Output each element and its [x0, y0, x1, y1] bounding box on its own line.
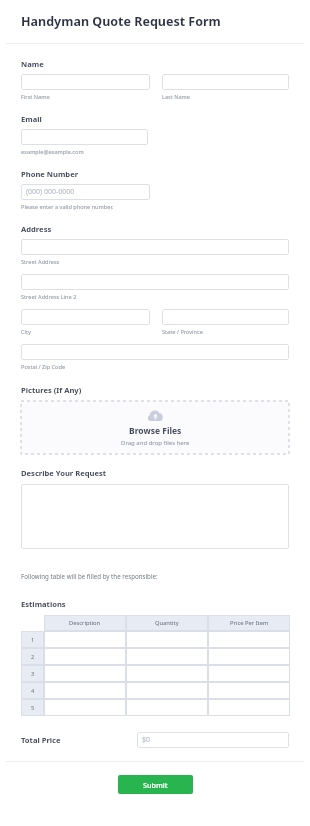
- staticText: Street Address: [21, 258, 60, 266]
- staticText: Last Name: [162, 93, 190, 101]
- staticText: Handyman Quote Request Form: [21, 13, 221, 30]
- staticText: (000) 000-0000: [26, 187, 75, 197]
- button[interactable]: [208, 631, 290, 648]
- staticText: 2: [31, 653, 35, 661]
- button[interactable]: [126, 682, 208, 699]
- staticText: Please enter a valid phone number.: [21, 203, 114, 211]
- staticText: 5: [31, 704, 35, 712]
- staticText: Pictures (If Any): [21, 385, 82, 395]
- button[interactable]: Browse Files, drag and drop files here: [21, 401, 289, 454]
- staticText: Total Price: [21, 735, 61, 745]
- staticText: 1: [31, 636, 35, 644]
- staticText: Postal / Zip Code: [21, 363, 66, 371]
- button[interactable]: [44, 699, 126, 716]
- button[interactable]: [21, 344, 289, 360]
- staticText: example@example.com: [21, 148, 84, 156]
- staticText: $0: [142, 735, 151, 745]
- button[interactable]: [21, 74, 150, 90]
- button[interactable]: [208, 648, 290, 665]
- staticText: Estimations: [21, 599, 66, 609]
- staticText: State / Province: [162, 328, 203, 336]
- button[interactable]: [208, 665, 290, 682]
- staticText: Following table will be filled by the re…: [21, 572, 158, 580]
- staticText: Price Per Item: [230, 619, 269, 627]
- staticText: First Name: [21, 93, 50, 101]
- button[interactable]: [208, 682, 290, 699]
- button[interactable]: [126, 648, 208, 665]
- staticText: Quantity: [155, 619, 179, 627]
- button[interactable]: [44, 631, 126, 648]
- button[interactable]: [21, 129, 148, 145]
- button[interactable]: [21, 239, 289, 255]
- button[interactable]: [44, 682, 126, 699]
- staticText: Phone Number: [21, 169, 79, 179]
- staticText: Submit: [143, 780, 168, 790]
- button[interactable]: [208, 699, 290, 716]
- staticText: Drag and drop files here: [121, 439, 190, 447]
- staticText: Address: [21, 224, 52, 234]
- button[interactable]: Submit: [118, 775, 193, 794]
- button[interactable]: (000) 000-0000: [21, 184, 150, 200]
- staticText: 4: [31, 687, 35, 695]
- staticText: City: [21, 328, 31, 336]
- button[interactable]: [162, 309, 289, 325]
- staticText: Email: [21, 114, 42, 124]
- button[interactable]: [21, 309, 150, 325]
- button[interactable]: [21, 274, 289, 290]
- button[interactable]: [126, 631, 208, 648]
- button[interactable]: $0: [137, 732, 289, 748]
- button[interactable]: [44, 665, 126, 682]
- button[interactable]: [126, 665, 208, 682]
- button[interactable]: [44, 648, 126, 665]
- staticText: Name: [21, 59, 44, 69]
- staticText: 3: [31, 670, 35, 678]
- button[interactable]: [126, 699, 208, 716]
- button[interactable]: [21, 484, 289, 549]
- staticText: Describe Your Request: [21, 468, 107, 478]
- staticText: Street Address Line 2: [21, 293, 77, 301]
- staticText: Description: [69, 619, 101, 627]
- button[interactable]: [162, 74, 289, 90]
- staticText: Browse Files: [129, 425, 182, 437]
